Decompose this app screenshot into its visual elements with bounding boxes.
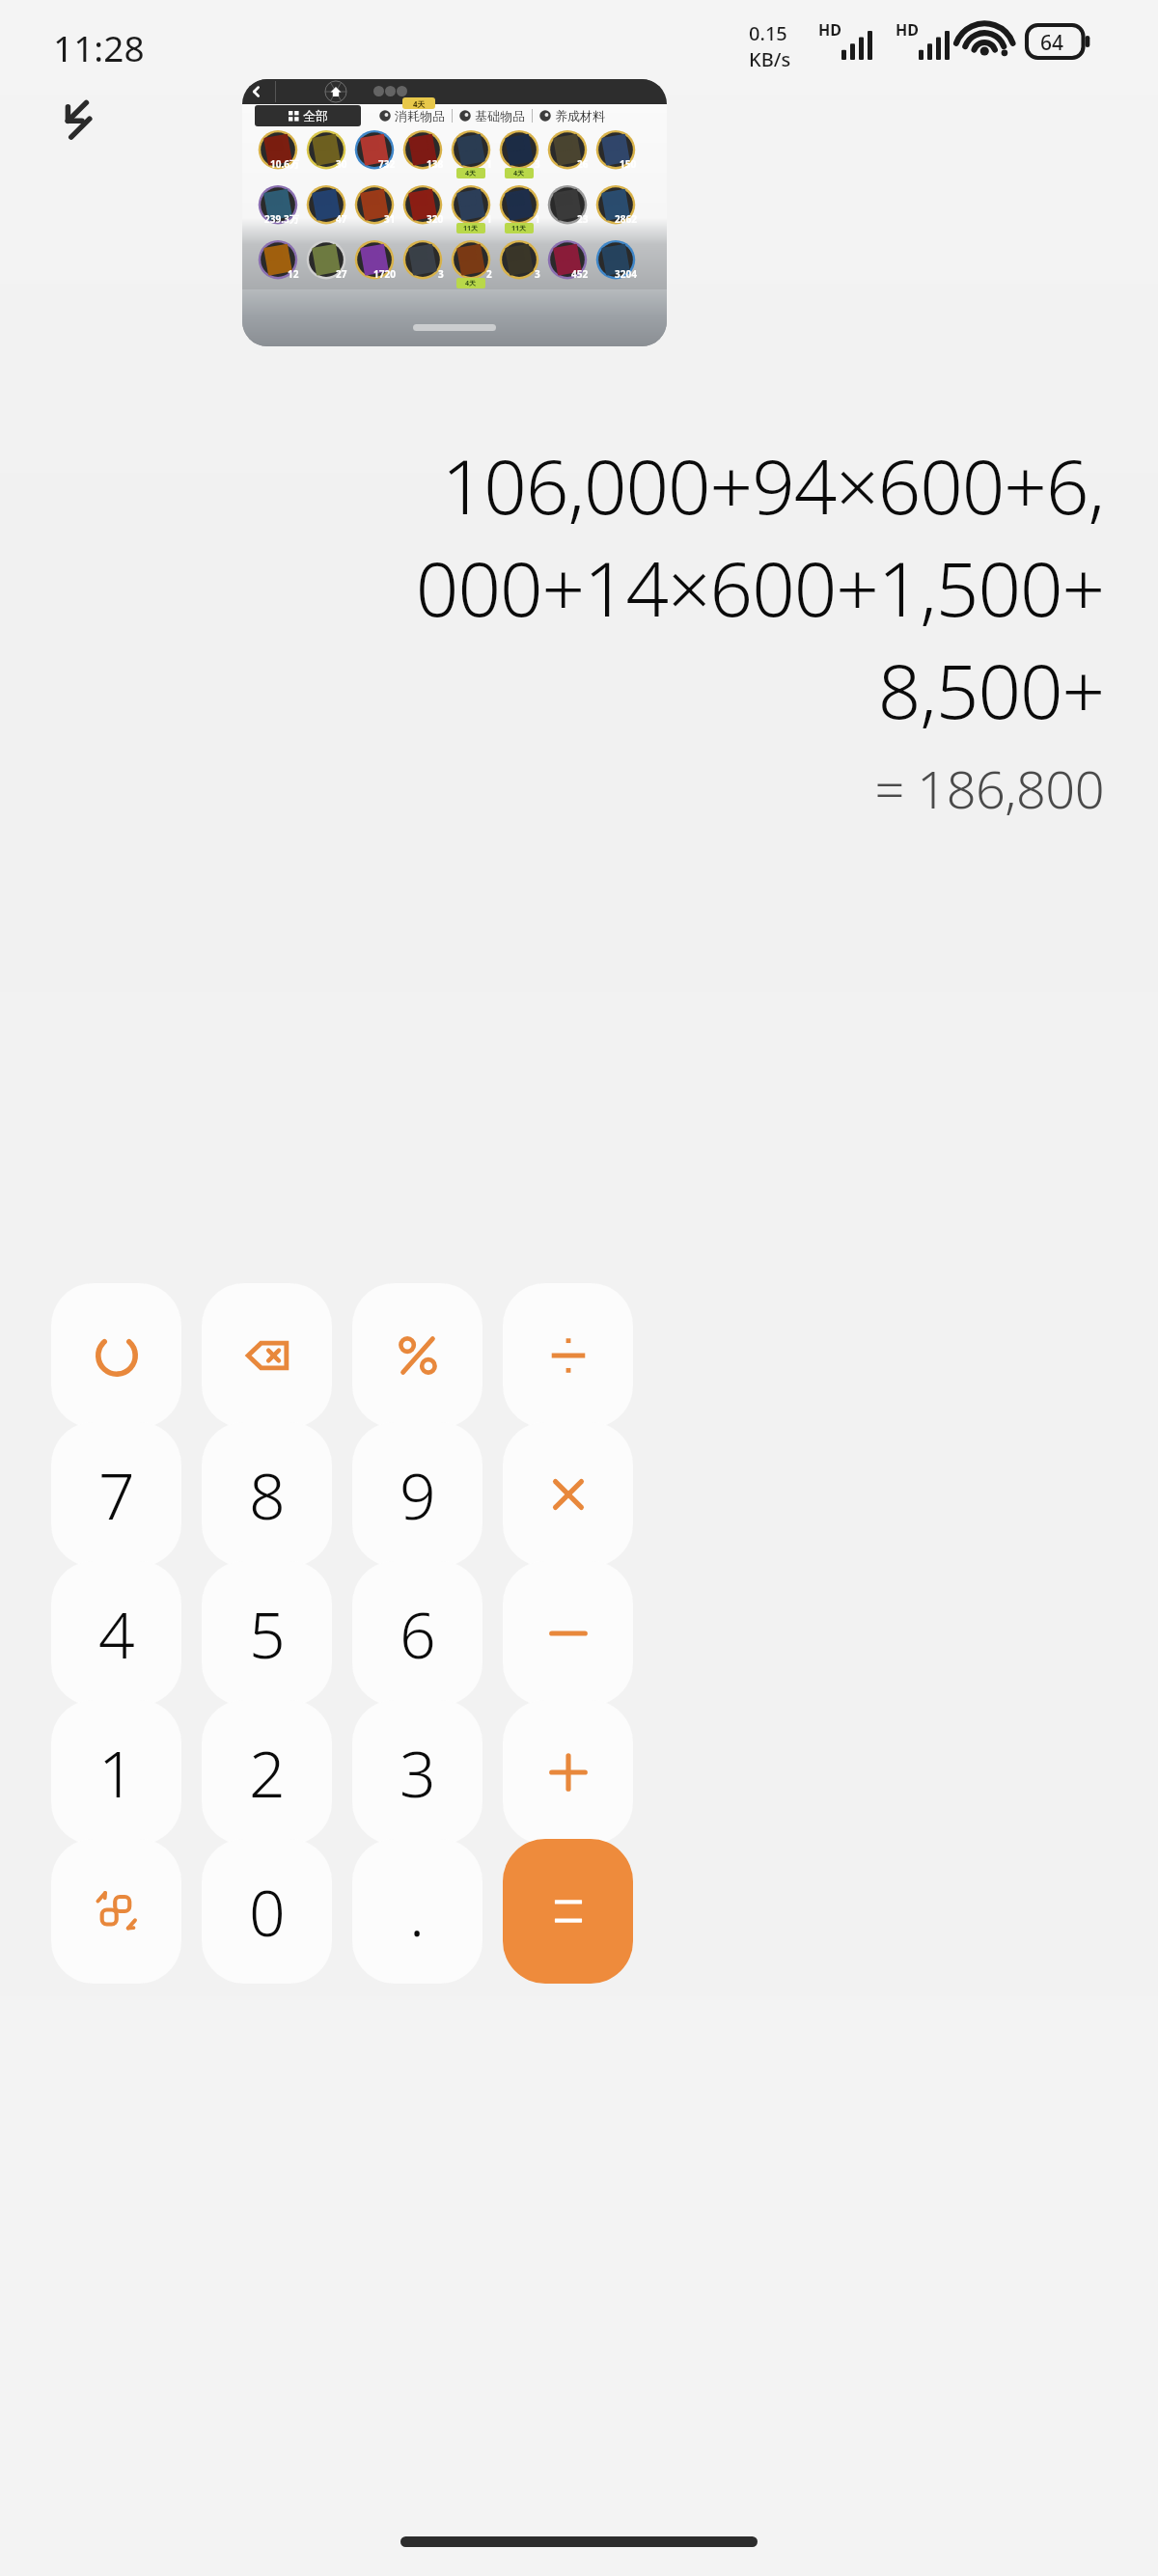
button[interactable]: Percent <box>352 1283 482 1428</box>
button[interactable]: Floating game window <box>242 79 667 346</box>
button[interactable]: Multiply <box>503 1422 633 1567</box>
staticText: 000+14×600+1,500+ <box>415 536 1104 639</box>
staticText: 23 <box>577 212 589 226</box>
button[interactable]: Divide <box>503 1283 633 1428</box>
button[interactable]: 27 <box>304 239 348 284</box>
staticText: 30 <box>336 157 347 171</box>
button[interactable]: 23 <box>545 184 590 229</box>
staticText: 452 <box>571 267 589 281</box>
button[interactable]: Backspace <box>202 1283 332 1428</box>
staticText: 7 <box>98 1451 135 1538</box>
button[interactable]: 12 <box>256 239 300 284</box>
button[interactable]: 452 <box>545 239 590 284</box>
button[interactable]: 150 <box>593 129 638 174</box>
staticText: 基础物品 <box>475 108 525 123</box>
button[interactable]: 9 <box>352 1422 482 1567</box>
staticText: 11天 <box>463 224 479 233</box>
button[interactable]: 320 <box>400 184 445 229</box>
staticText: 10.6万 <box>270 157 299 171</box>
staticText: 138 <box>427 157 444 171</box>
staticText: 2862 <box>615 212 637 226</box>
staticText: 6 <box>400 1590 436 1677</box>
button[interactable]: 消耗物品 <box>379 108 445 123</box>
button[interactable]: 1720 <box>352 239 397 284</box>
staticText: 239.3万 <box>264 212 299 226</box>
button[interactable]: 138 <box>400 129 445 174</box>
button[interactable]: . <box>352 1839 482 1984</box>
button[interactable]: Equals <box>503 1839 633 1984</box>
staticText: 732 <box>378 157 396 171</box>
staticText: 3 <box>535 267 540 281</box>
staticText: 1 <box>486 157 492 171</box>
button[interactable]: 2 <box>202 1700 332 1845</box>
button[interactable]: 1 <box>51 1700 181 1845</box>
button[interactable]: 3 <box>400 239 445 284</box>
staticText: 4 <box>98 1590 135 1677</box>
staticText: 3 <box>438 267 444 281</box>
button[interactable]: 26 <box>545 129 590 174</box>
button[interactable]: Clear <box>51 1283 181 1428</box>
staticText: 2 <box>486 267 492 281</box>
button[interactable]: 0 <box>202 1839 332 1984</box>
staticText: 2 <box>249 1729 286 1816</box>
button[interactable]: 732 <box>352 129 397 174</box>
button[interactable]: 239.3万 <box>256 184 300 229</box>
staticText: 9 <box>400 1451 436 1538</box>
button[interactable]: 养成材料 <box>539 108 605 123</box>
button[interactable]: 10.6万 <box>256 129 300 174</box>
staticText: 3204 <box>615 267 637 281</box>
staticText: 消耗物品 <box>395 108 445 123</box>
staticText: 11天 <box>511 224 527 233</box>
button[interactable]: 全部 <box>255 105 361 126</box>
staticText: 0 <box>249 1868 286 1955</box>
staticText: HD <box>896 19 919 41</box>
staticText: 31 <box>384 212 396 226</box>
staticText: 1 <box>535 212 540 226</box>
button[interactable]: 3 <box>352 1700 482 1845</box>
staticText: 320 <box>427 212 444 226</box>
button[interactable]: 3 <box>497 129 541 174</box>
button[interactable]: 3 <box>497 239 541 284</box>
staticText: KB/s <box>749 46 791 72</box>
staticText: 3 <box>400 1729 436 1816</box>
button[interactable]: 1 <box>497 184 541 229</box>
staticText: 26 <box>577 157 589 171</box>
button[interactable]: 4 <box>51 1561 181 1706</box>
button[interactable]: 30 <box>304 129 348 174</box>
staticText: = 186,800 <box>874 753 1104 824</box>
button[interactable]: 基础物品 <box>459 108 525 123</box>
staticText: 8,500+ <box>877 639 1104 741</box>
staticText: 4天 <box>465 169 477 178</box>
staticText: 106,000+94×600+6, <box>441 434 1104 536</box>
staticText: 4天 <box>513 169 525 178</box>
button[interactable]: 47 <box>304 184 348 229</box>
button[interactable]: Plus <box>503 1700 633 1845</box>
button[interactable]: Minus <box>503 1561 633 1706</box>
staticText: 5 <box>249 1590 286 1677</box>
button[interactable]: 2 <box>449 239 493 284</box>
staticText: 全部 <box>303 108 328 123</box>
staticText: 养成材料 <box>555 108 605 123</box>
staticText: 1 <box>98 1729 135 1816</box>
button[interactable]: 3204 <box>593 239 638 284</box>
button[interactable]: 2862 <box>593 184 638 229</box>
staticText: 27 <box>336 267 347 281</box>
staticText: 47 <box>336 212 347 226</box>
staticText: 64 <box>1040 29 1064 57</box>
button[interactable]: Unit converter <box>51 1839 181 1984</box>
staticText: 4天 <box>413 98 426 109</box>
button[interactable]: 1 <box>449 184 493 229</box>
staticText: 8 <box>249 1451 286 1538</box>
button[interactable]: 5 <box>202 1561 332 1706</box>
button[interactable]: 7 <box>51 1422 181 1567</box>
staticText: . <box>409 1868 426 1955</box>
staticText: 3 <box>535 157 540 171</box>
button[interactable]: 31 <box>352 184 397 229</box>
staticText: 1720 <box>373 267 396 281</box>
staticText: 4天 <box>465 279 477 288</box>
button[interactable]: Collapse floating window <box>46 91 100 145</box>
staticText: 0.15 <box>749 20 787 46</box>
button[interactable]: 1 <box>449 129 493 174</box>
button[interactable]: 6 <box>352 1561 482 1706</box>
button[interactable]: 8 <box>202 1422 332 1567</box>
